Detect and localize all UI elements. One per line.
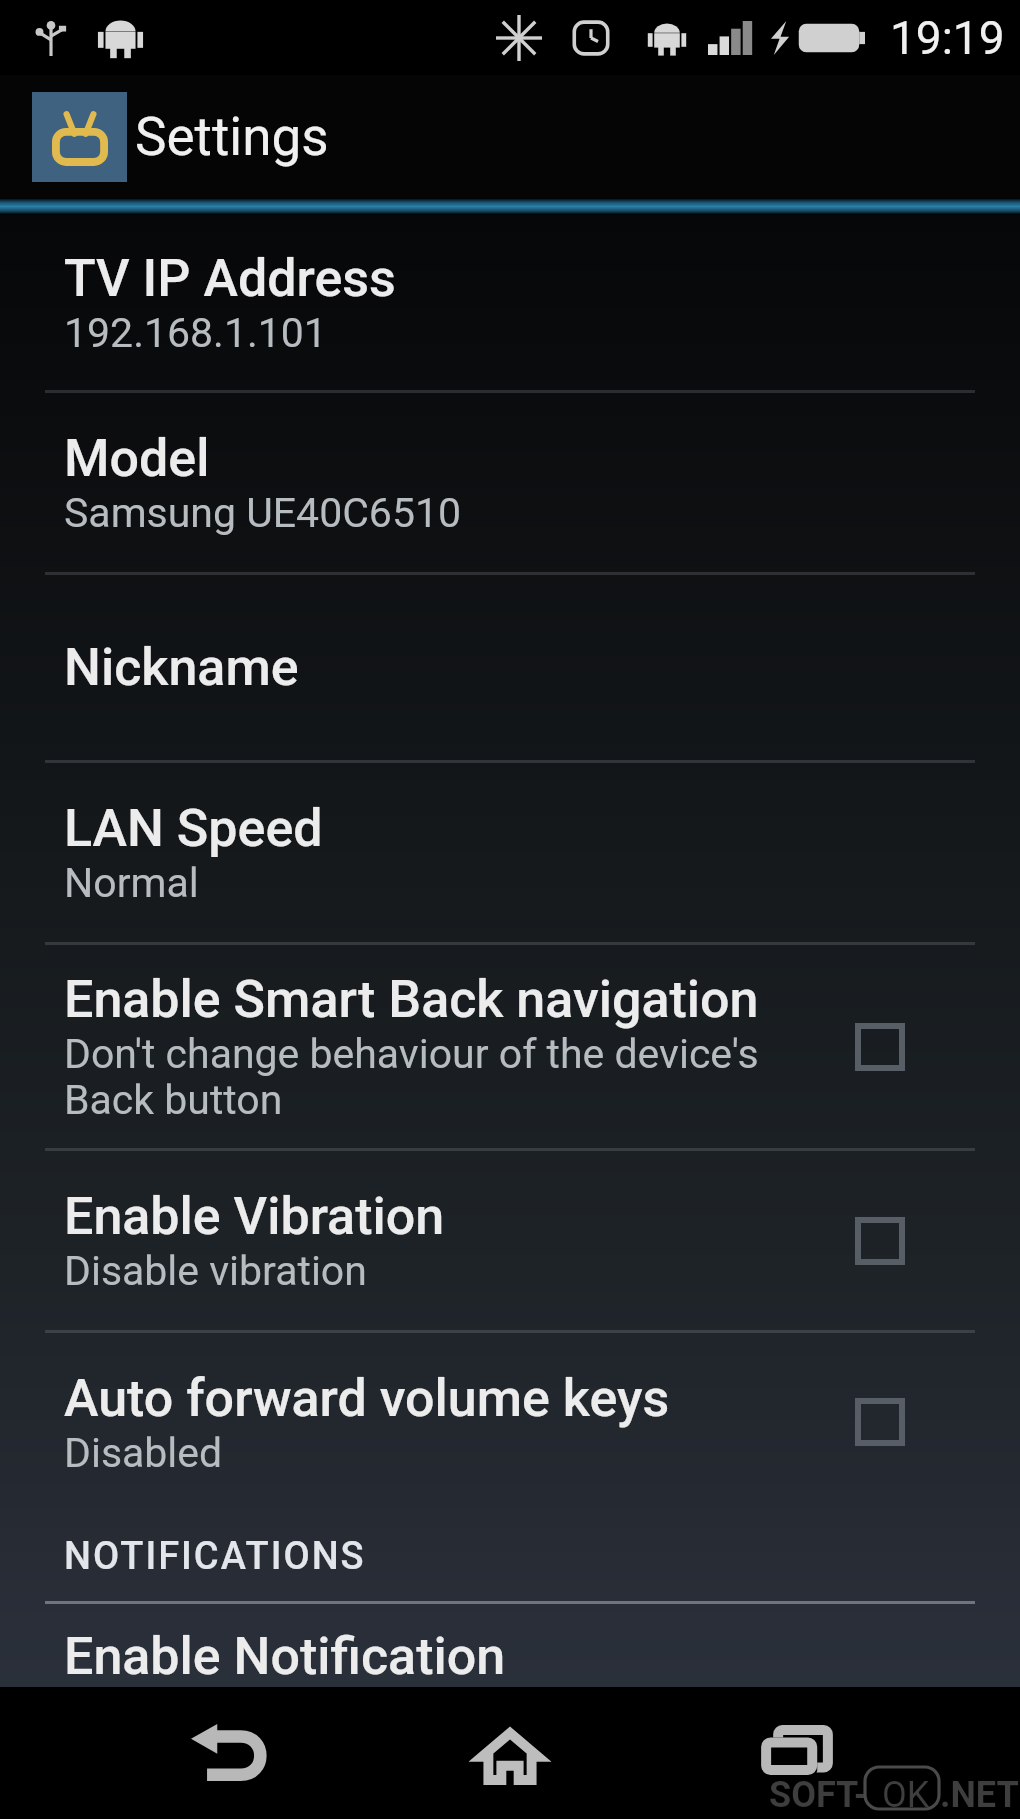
button[interactable]: Enable Smart Back navigation [0,945,1020,1148]
button[interactable]: Toggle Auto forward volume keys [828,1367,932,1477]
staticText: LAN Speed [64,798,323,859]
button[interactable]: Enable Notification [0,1604,1020,1686]
staticText: Disable vibration [64,1247,367,1295]
button[interactable]: Home [341,1687,679,1819]
button[interactable]: LAN Speed [0,763,1020,942]
button[interactable]: Toggle Enable Smart Back navigation [828,992,932,1102]
staticText: 192.168.1.101 [64,309,327,357]
staticText: Auto forward volume keys [64,1368,670,1429]
staticText: 19:19 [890,11,1005,65]
staticText: TV IP Address [64,248,396,309]
staticText: NOTIFICATIONS [64,1534,366,1579]
button[interactable]: Recent apps [679,1687,909,1819]
button[interactable]: Auto forward volume keys [0,1333,1020,1511]
button[interactable]: Toggle Enable Vibration [828,1186,932,1296]
button[interactable]: Enable Vibration [0,1151,1020,1330]
staticText: Model [64,428,210,489]
button[interactable]: Back [113,1687,341,1819]
staticText: Enable Smart Back navigation [64,969,759,1030]
button[interactable]: Settings [0,75,1020,198]
staticText: Disabled [64,1429,223,1477]
button[interactable]: Nickname [0,575,1020,760]
staticText: Settings [135,106,329,168]
staticText: Samsung UE40C6510 [64,489,462,537]
staticText: .NET [940,1774,1019,1814]
staticText: SOFT- [769,1774,869,1814]
staticText: OK [882,1774,930,1814]
button[interactable]: TV IP Address [0,215,1020,390]
staticText: Enable Vibration [64,1186,445,1247]
staticText: Nickname [64,637,299,698]
staticText: Enable Notification [64,1626,506,1686]
staticText: Don't change behaviour of the device's B… [64,1030,759,1124]
button[interactable]: Model [0,393,1020,572]
staticText: Normal [64,859,199,907]
